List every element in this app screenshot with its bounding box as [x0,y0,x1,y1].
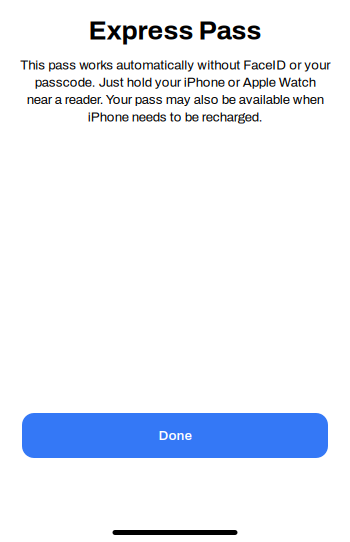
staticText: This pass works automatically without Fa… [20,58,330,124]
button[interactable]: Done [22,413,328,458]
staticText: Express Pass [88,16,261,45]
staticText: Done [158,428,191,443]
